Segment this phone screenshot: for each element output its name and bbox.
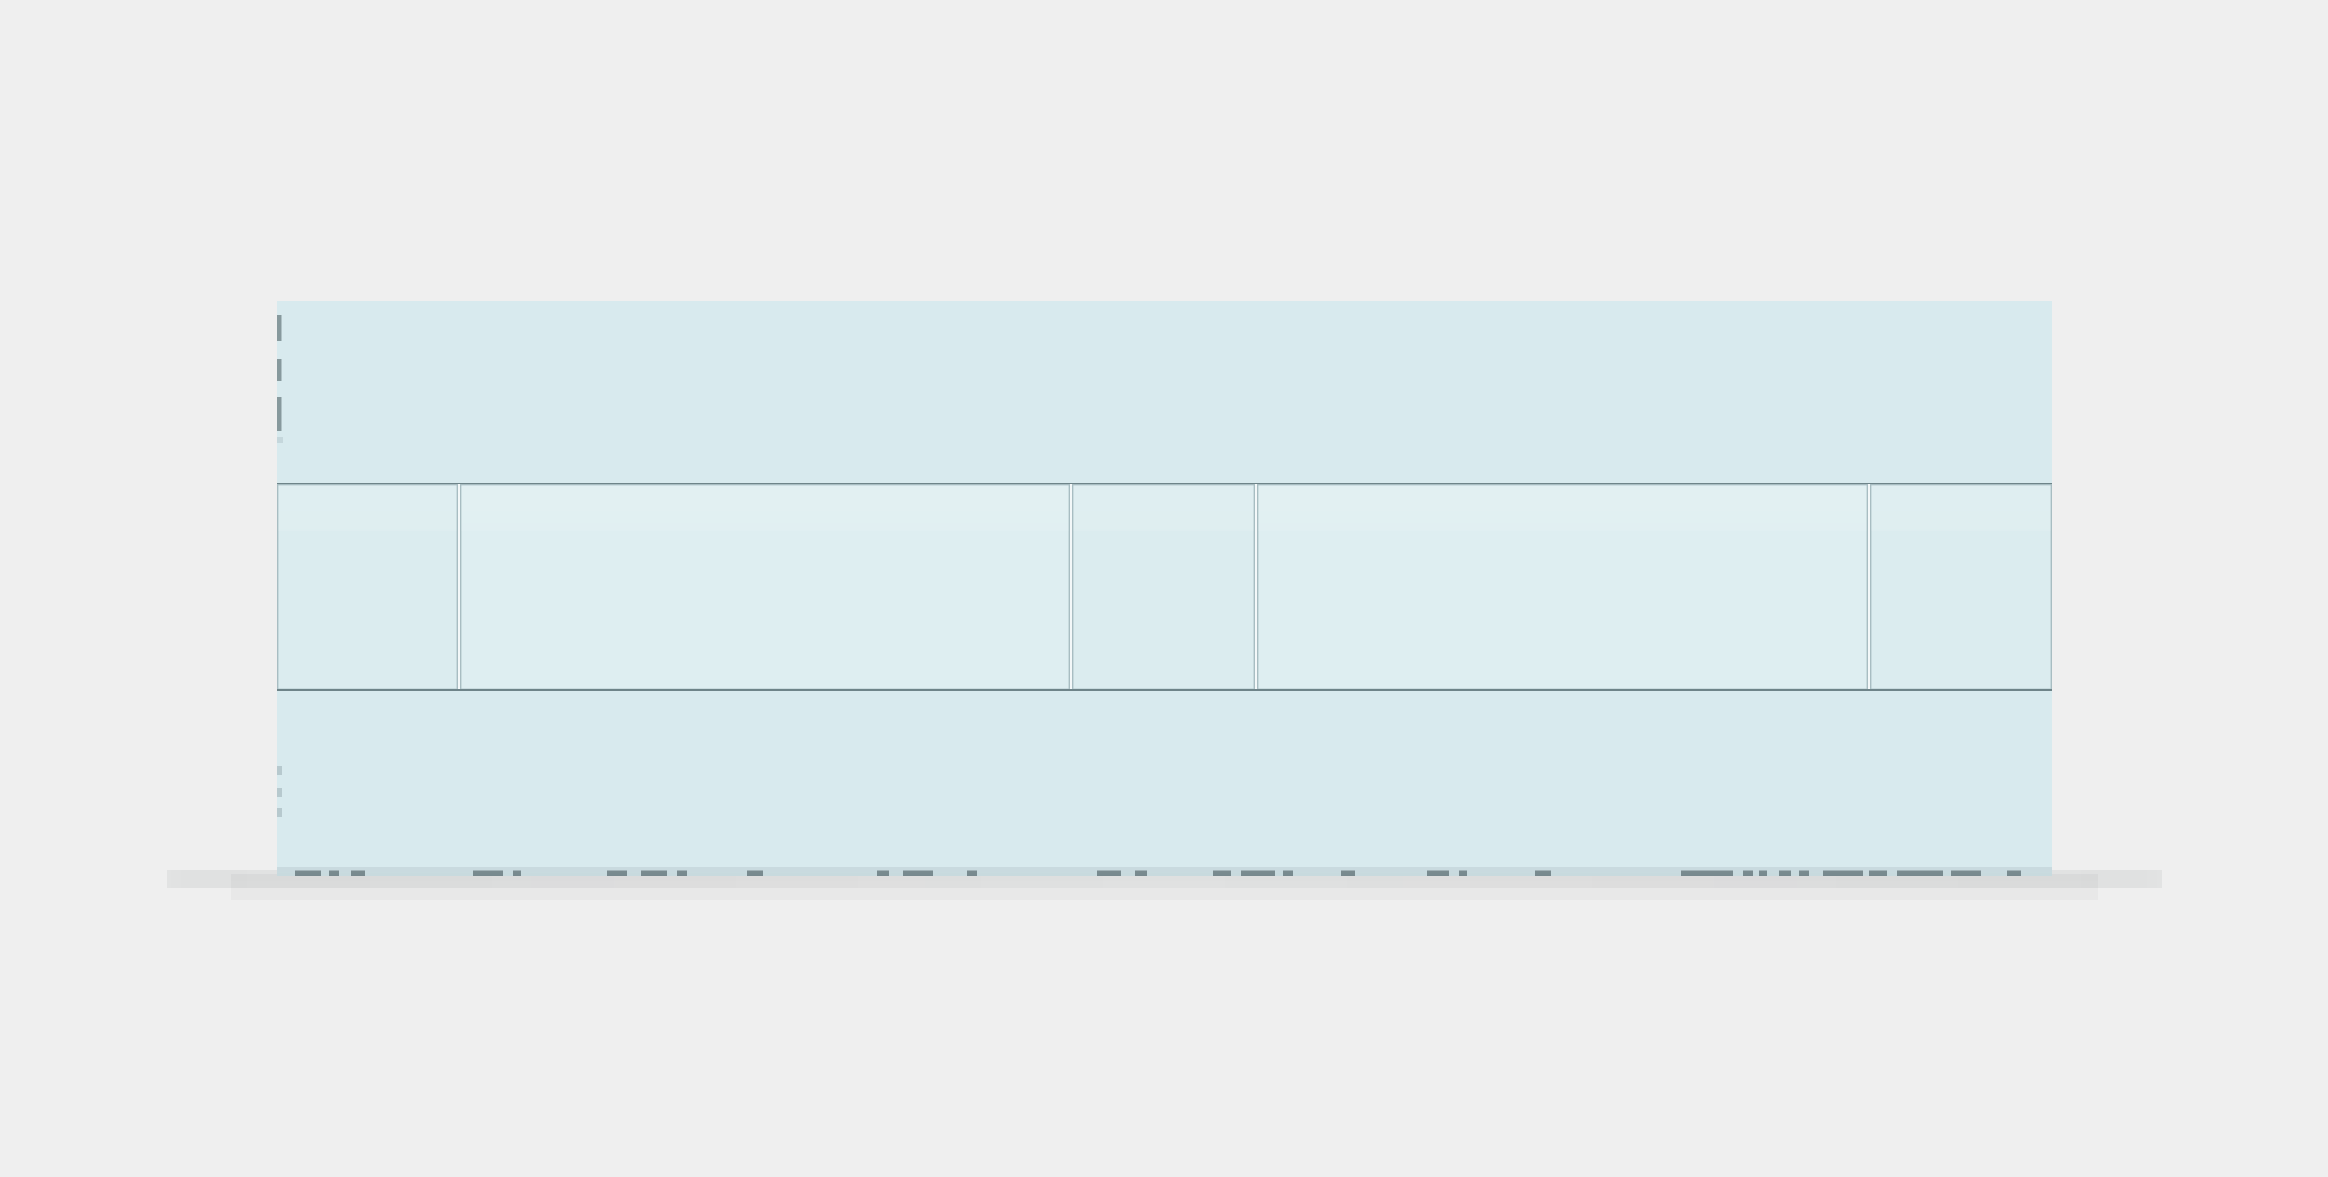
button[interactable]: Right content panel — [1257, 484, 1868, 690]
button[interactable]: Bottom region — [277, 690, 2052, 876]
button[interactable]: Centre panel — [1072, 484, 1255, 690]
button[interactable]: Right panel — [1870, 484, 2052, 690]
button[interactable]: Left panel — [277, 484, 458, 690]
button[interactable]: Left content panel — [460, 484, 1070, 690]
button[interactable]: Top region — [277, 301, 2052, 484]
